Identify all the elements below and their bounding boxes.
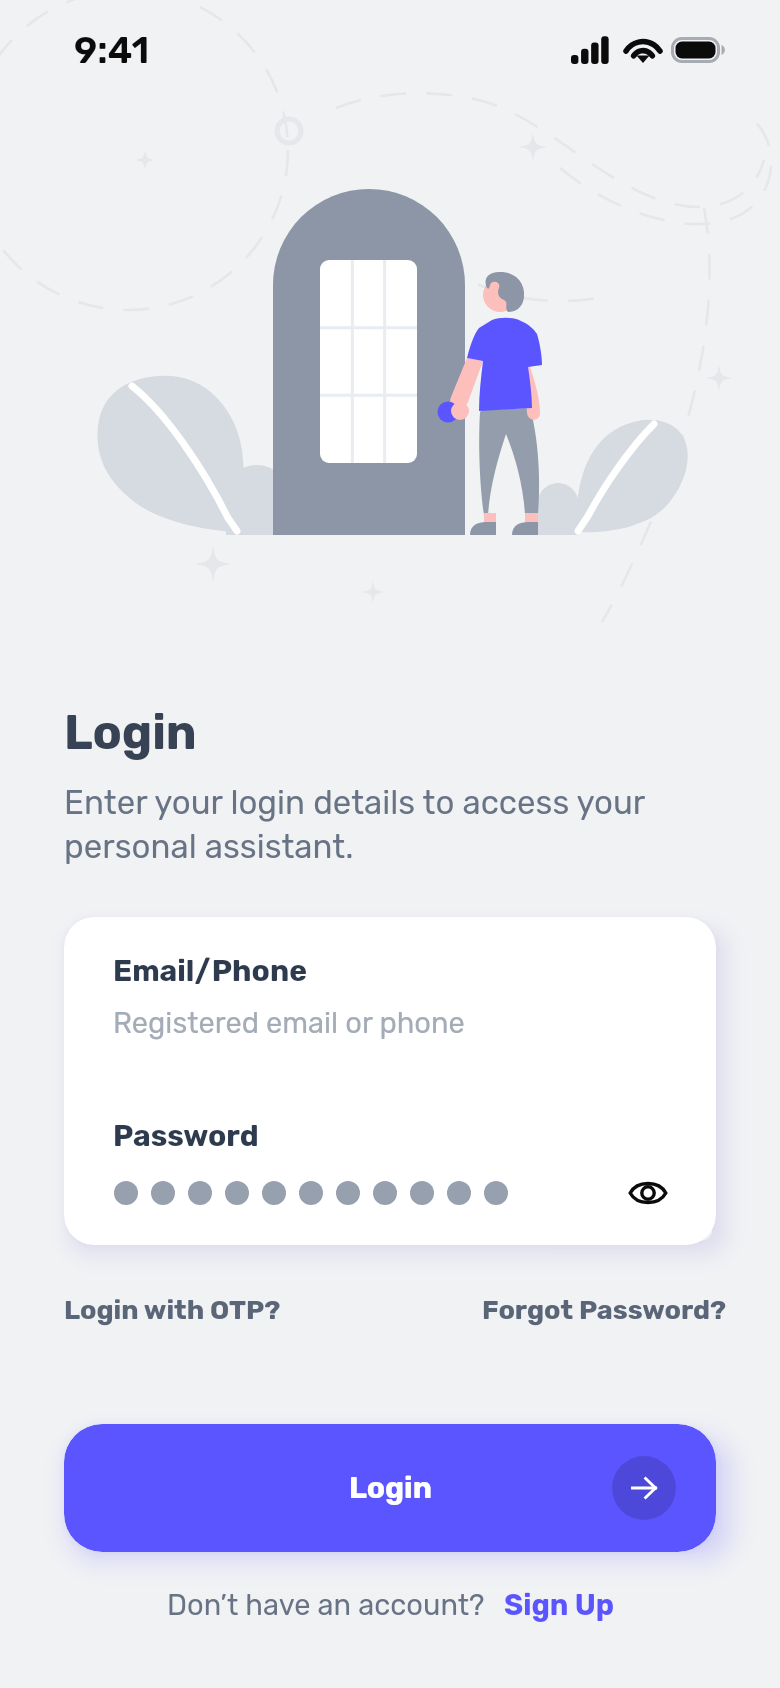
button[interactable]: Sign Up <box>504 1588 614 1622</box>
staticText: Sign Up <box>504 1588 614 1622</box>
staticText: Don’t have an account? <box>167 1588 485 1622</box>
staticText: Password <box>113 1118 259 1154</box>
staticText: 9:41 <box>74 28 150 72</box>
button[interactable]: Show password <box>616 1161 680 1225</box>
staticText: Login <box>349 1470 432 1506</box>
staticText: Registered email or phone <box>113 1006 465 1040</box>
staticText: Email/Phone <box>113 953 307 989</box>
staticText: Enter your login details to access your … <box>64 783 664 866</box>
button[interactable]: Continue <box>612 1456 676 1520</box>
button[interactable]: Forgot Password? <box>482 1294 727 1326</box>
button[interactable]: Login with OTP? <box>64 1294 281 1326</box>
button[interactable]: Login <box>64 1424 716 1552</box>
staticText: Login <box>64 704 197 761</box>
staticText: Login with OTP? <box>64 1294 281 1326</box>
staticText: Forgot Password? <box>482 1294 727 1326</box>
